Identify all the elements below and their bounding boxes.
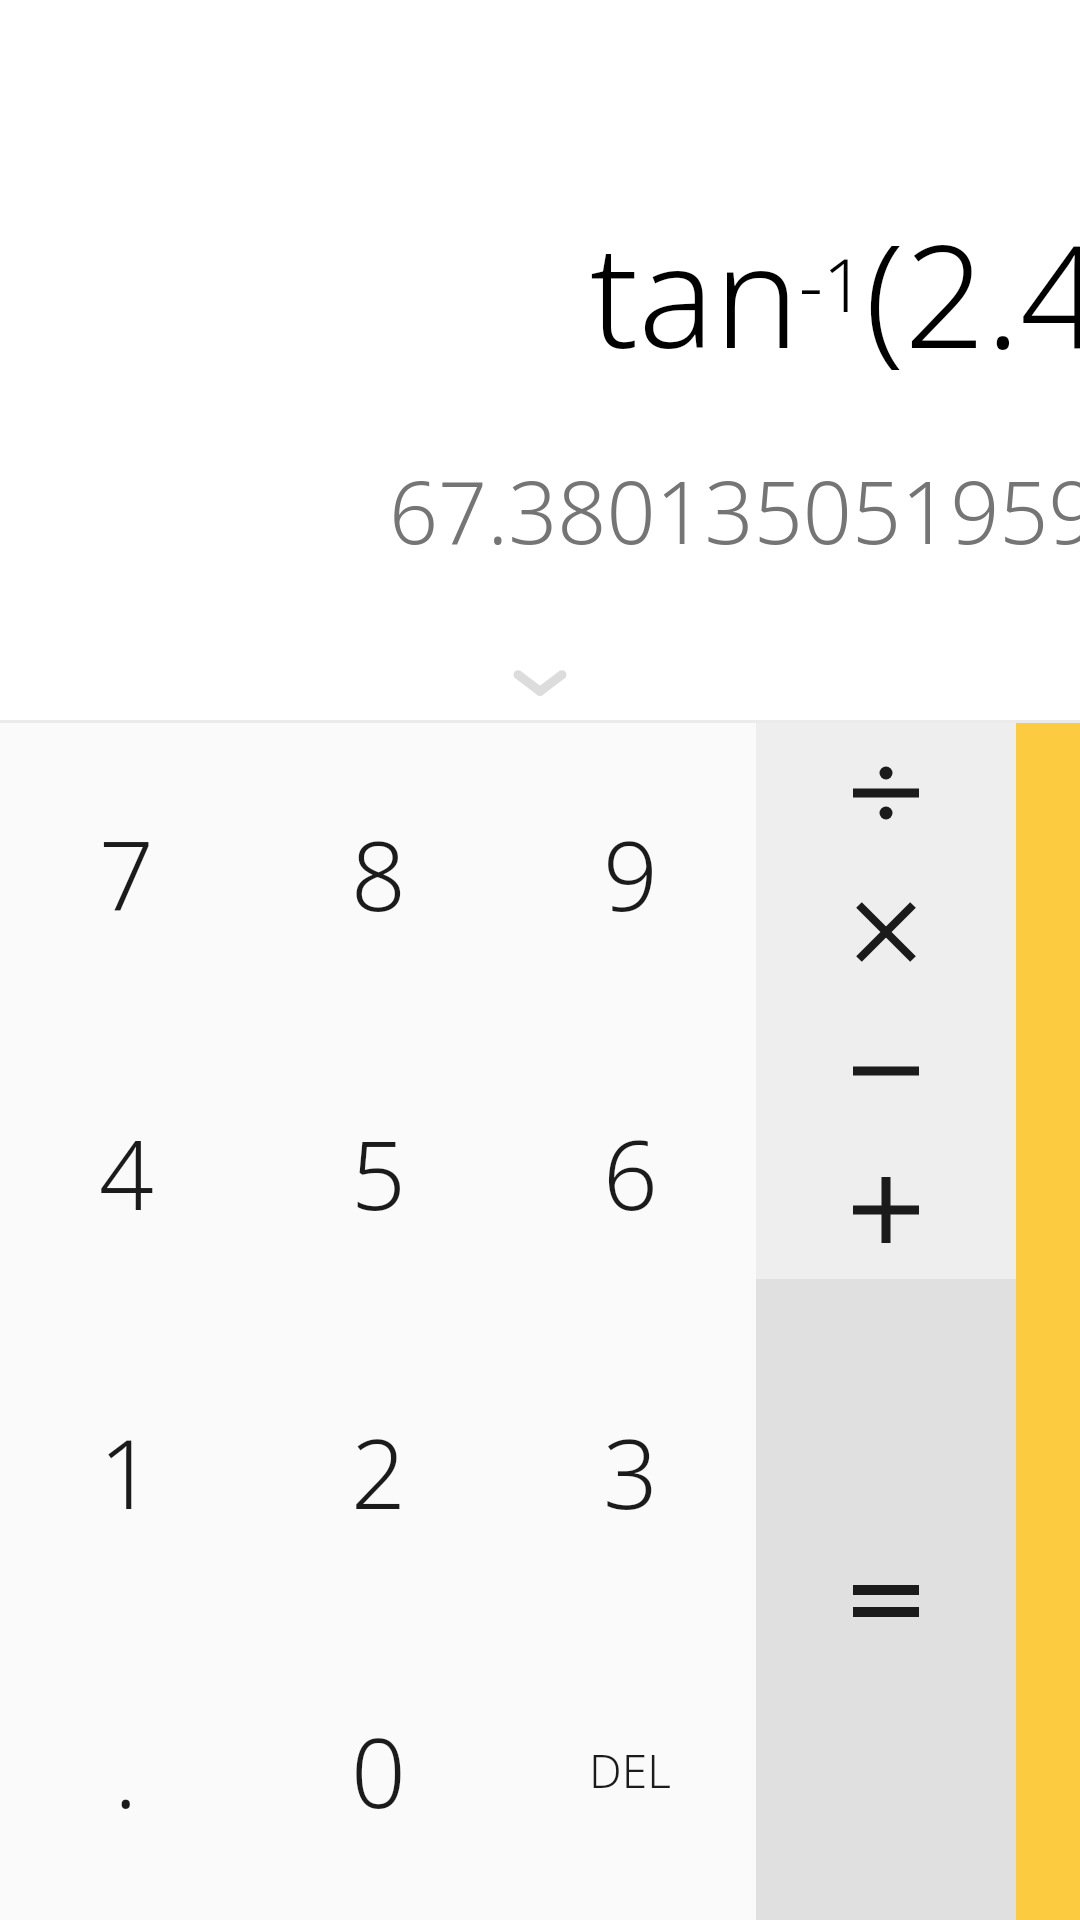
button[interactable]: Expand history [480,643,600,723]
button[interactable]: 1 [0,1322,252,1621]
staticText: tan-1(2.4 [590,196,1080,389]
button[interactable]: 4 [0,1023,252,1322]
button[interactable]: 9 [504,723,756,1023]
staticText: 8 [351,808,406,939]
staticText: 9 [603,808,658,939]
staticText: 5 [351,1107,406,1238]
button[interactable]: . [0,1621,252,1920]
staticText: 0 [351,1705,406,1836]
staticText: 1 [99,1406,154,1537]
button[interactable]: 3 [504,1322,756,1621]
button[interactable]: Operator [756,723,1016,862]
staticText: 67.380135051959 [389,452,1080,569]
button[interactable]: Equals [756,1279,1016,1920]
button[interactable]: 0 [252,1621,504,1920]
staticText: 2 [351,1406,406,1537]
staticText: 3 [603,1406,658,1537]
button[interactable]: Operator [756,1140,1016,1279]
button[interactable]: 6 [504,1023,756,1322]
staticText: . [114,1705,138,1836]
staticText: DEL [589,1739,671,1802]
button[interactable]: Operator [756,1001,1016,1140]
button[interactable]: Operator [756,862,1016,1001]
button[interactable]: DEL [504,1621,756,1920]
button[interactable]: 2 [252,1322,504,1621]
staticText: 7 [99,808,154,939]
button[interactable]: 5 [252,1023,504,1322]
button[interactable]: tan-1(2.4 [0,0,1080,723]
button[interactable]: 8 [252,723,504,1023]
button[interactable]: 7 [0,723,252,1023]
staticText: 6 [603,1107,658,1238]
staticText: 4 [99,1107,154,1238]
